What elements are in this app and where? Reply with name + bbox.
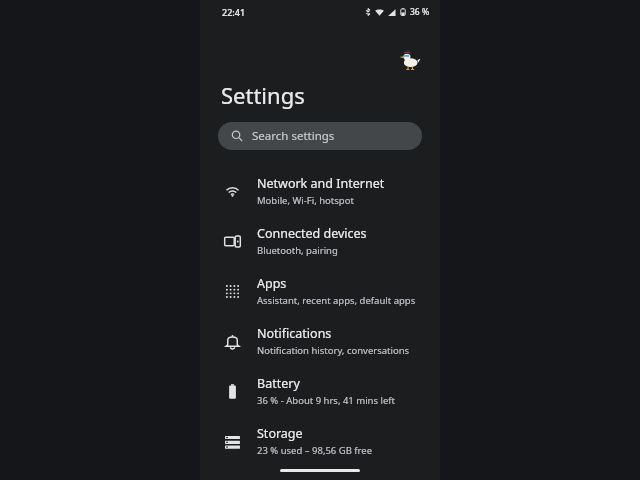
button[interactable]: Storage xyxy=(200,416,440,466)
staticText: Mobile, Wi-Fi, hotspot xyxy=(257,194,354,207)
staticText: Settings xyxy=(221,80,305,110)
staticText: 36 % - About 9 hrs, 41 mins left xyxy=(257,394,395,407)
button[interactable]: Network and Internet xyxy=(200,166,440,216)
staticText: 23 % used – 98,56 GB free xyxy=(257,444,373,457)
button[interactable]: Search settings xyxy=(218,122,422,150)
button[interactable]: Apps xyxy=(200,266,440,316)
staticText: Assistant, recent apps, default apps xyxy=(257,294,416,307)
staticText: Storage xyxy=(257,425,303,442)
staticText: Network and Internet xyxy=(257,175,385,192)
staticText: Bluetooth, pairing xyxy=(257,244,338,257)
staticText: Connected devices xyxy=(257,225,367,242)
staticText: Notifications xyxy=(257,325,332,342)
button[interactable]: Connected devices xyxy=(200,216,440,266)
staticText: Apps xyxy=(257,275,287,292)
staticText: Battery xyxy=(257,375,300,392)
staticText: Notification history, conversations xyxy=(257,344,410,357)
staticText: 22:41 xyxy=(222,6,246,18)
button[interactable]: Account avatar xyxy=(396,46,424,74)
button[interactable]: Battery xyxy=(200,366,440,416)
button[interactable]: Notifications xyxy=(200,316,440,366)
staticText: 36 % xyxy=(410,6,430,18)
staticText: Search settings xyxy=(252,128,335,144)
